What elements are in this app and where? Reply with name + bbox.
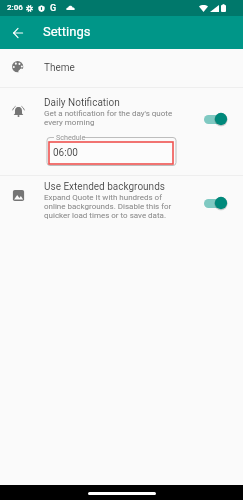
- staticText: Expand Quote It with hundreds of online …: [44, 193, 184, 220]
- staticText: Daily Notification: [44, 97, 120, 109]
- staticText: 06:00: [53, 147, 78, 159]
- button[interactable]: Toggle: [204, 112, 227, 126]
- button[interactable]: Toggle: [204, 196, 227, 210]
- button[interactable]: Back: [0, 16, 35, 49]
- staticText: 2:06: [7, 3, 23, 12]
- staticText: Use Extended backgrounds: [44, 181, 165, 193]
- button[interactable]: Daily Notification: [0, 88, 243, 130]
- staticText: Get a notification for the day's quote e…: [44, 109, 184, 127]
- button[interactable]: Theme: [0, 49, 243, 87]
- staticText: G: [50, 3, 57, 14]
- staticText: Schedule: [56, 133, 86, 141]
- staticText: Theme: [44, 62, 75, 74]
- staticText: Settings: [43, 24, 91, 39]
- button[interactable]: Use Extended backgrounds: [0, 176, 243, 228]
